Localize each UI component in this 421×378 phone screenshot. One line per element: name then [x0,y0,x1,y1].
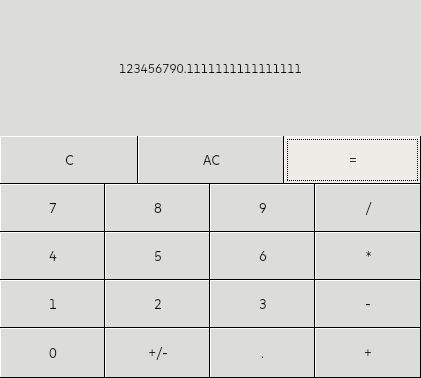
button[interactable]: 2 [105,280,210,328]
button[interactable]: 9 [210,184,315,232]
button[interactable]: 4 [0,232,105,280]
button[interactable]: +/- [105,328,210,378]
staticText: 4 [49,248,57,264]
button[interactable]: * [315,232,421,280]
button[interactable]: 1 [0,280,105,328]
button[interactable]: C [0,136,138,184]
staticText: + [364,345,372,361]
button[interactable]: 0 [0,328,105,378]
button[interactable]: 8 [105,184,210,232]
staticText: 123456790.1111111111111111 [119,61,302,76]
button[interactable]: + [315,328,421,378]
staticText: - [365,296,371,312]
staticText: 7 [49,200,57,216]
button[interactable]: 3 [210,280,315,328]
button[interactable]: 7 [0,184,105,232]
staticText: 3 [259,296,267,312]
staticText: / [365,200,372,216]
button[interactable]: - [315,280,421,328]
button[interactable]: / [315,184,421,232]
staticText: 8 [154,200,162,216]
button[interactable]: AC [138,136,284,184]
staticText: . [261,345,264,361]
staticText: 6 [259,248,267,264]
staticText: +/- [148,345,168,361]
staticText: 0 [49,345,57,361]
staticText: * [365,248,372,264]
button[interactable]: = [284,136,421,184]
staticText: 2 [154,296,162,312]
staticText: = [349,152,357,168]
staticText: C [65,152,74,168]
staticText: AC [203,152,220,168]
button[interactable]: . [210,328,315,378]
staticText: 9 [259,200,267,216]
button[interactable]: 5 [105,232,210,280]
staticText: 5 [154,248,162,264]
button[interactable]: 6 [210,232,315,280]
staticText: 1 [49,296,57,312]
